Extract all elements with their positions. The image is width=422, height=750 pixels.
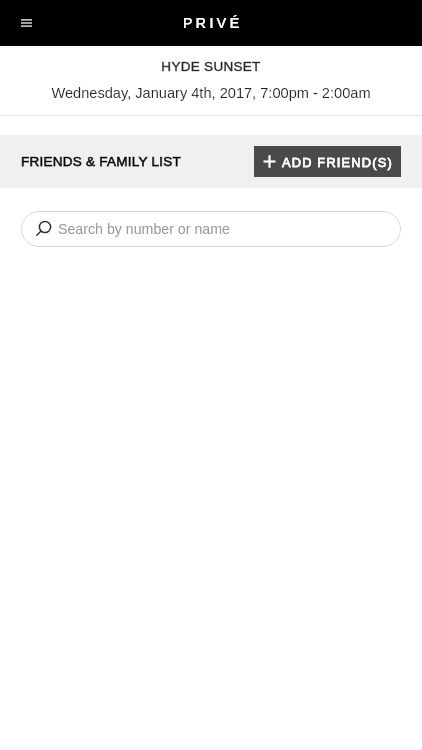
staticText: FRIENDS & FAMILY LIST [21, 154, 182, 169]
staticText: Wednesday, January 4th, 2017, 7:00pm - 2… [51, 85, 371, 101]
staticText: FRIENDS & FAMILY LIST [21, 154, 182, 169]
button[interactable]: ADD FRIEND(S) [254, 146, 401, 177]
staticText: ADD FRIEND(S) [282, 155, 393, 169]
button[interactable]: Open navigation menu [11, 8, 41, 38]
staticText: PRIVÉ [183, 15, 243, 31]
button[interactable]: Search by number or name [21, 211, 401, 247]
staticText: Search by number or name [58, 221, 230, 237]
staticText: ADD FRIEND(S) [282, 155, 393, 169]
staticText: PRIVÉ [183, 15, 243, 31]
staticText: HYDE SUNSET [161, 59, 261, 74]
staticText: HYDE SUNSET [161, 59, 261, 74]
